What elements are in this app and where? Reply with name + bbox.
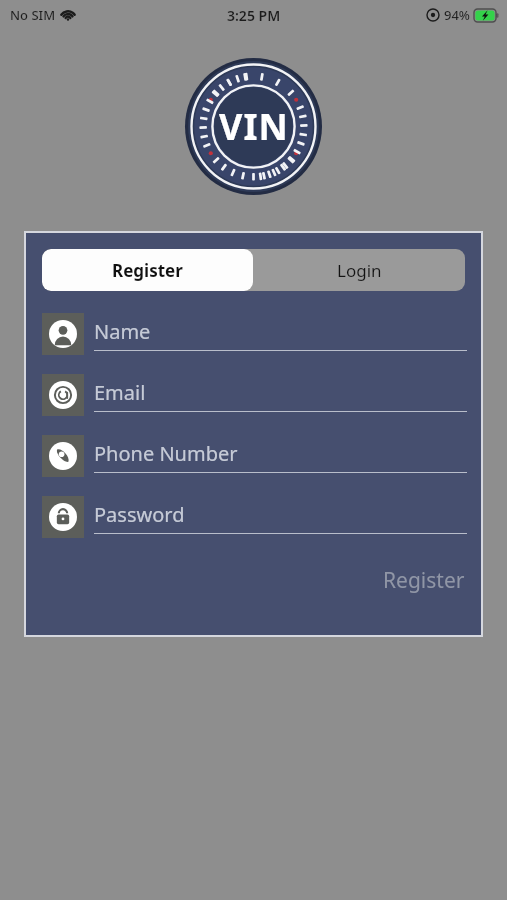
- staticText: Register: [383, 566, 465, 595]
- staticText: Password: [94, 501, 185, 528]
- staticText: 94%: [444, 6, 470, 24]
- staticText: Phone Number: [94, 440, 238, 467]
- staticText: Email: [94, 379, 146, 406]
- other: Password: [49, 503, 77, 531]
- other: Phone Number: [49, 442, 77, 470]
- button[interactable]: Register: [365, 558, 483, 603]
- staticText: Login: [337, 259, 382, 282]
- staticText: Register: [112, 259, 183, 282]
- staticText: Name: [94, 318, 151, 345]
- staticText: No SIM: [10, 6, 56, 24]
- staticText: 3:25 PM: [227, 6, 281, 25]
- staticText: VIN: [219, 102, 289, 151]
- button[interactable]: Login: [253, 249, 465, 291]
- other: Email: [49, 381, 77, 409]
- button[interactable]: Register: [42, 249, 253, 291]
- other: Name: [49, 320, 77, 348]
